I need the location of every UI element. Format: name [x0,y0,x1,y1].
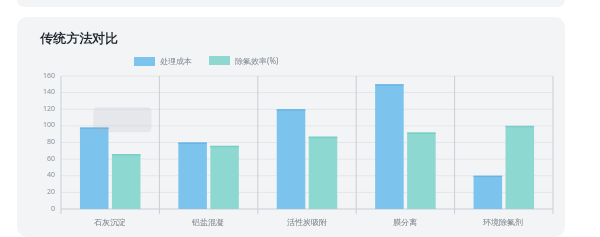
button[interactable]: 铝盐混凝 [192,217,224,227]
staticText: 100 [42,120,55,130]
button[interactable]: 环境除氟剂 [483,217,523,227]
staticText: 80 [46,137,55,147]
staticText: 处理成本 [160,56,192,66]
button[interactable]: 石灰沉淀 [94,217,126,227]
staticText: 40 [46,170,55,180]
button[interactable]: 处理成本 [132,54,194,68]
button[interactable]: 活性炭吸附 [287,217,327,227]
button[interactable]: 膜分离 [393,217,417,227]
staticText: 0 [50,204,55,214]
staticText: 20 [46,187,55,197]
staticText: 传统方法对比 [40,30,118,46]
staticText: 160 [42,71,55,81]
staticText: 120 [42,104,55,114]
button[interactable]: 除氟效率(%) [207,53,281,68]
staticText: 60 [46,154,55,164]
staticText: 除氟效率(%) [235,55,279,66]
staticText: 140 [42,87,55,97]
